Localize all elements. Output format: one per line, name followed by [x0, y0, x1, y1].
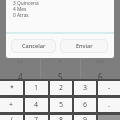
button[interactable]: 6	[74, 98, 96, 112]
staticText: .	[108, 100, 110, 110]
staticText: Cancelar	[22, 42, 46, 50]
button[interactable]: 3 Quincena	[13, 0, 114, 6]
staticText: 5	[58, 71, 63, 79]
staticText: 0 Atras	[13, 12, 29, 18]
staticText: Enviar	[76, 42, 93, 50]
staticText: +	[9, 100, 14, 110]
staticText: 4	[34, 100, 39, 110]
staticText: GHI	[17, 60, 23, 64]
button[interactable]: 1	[25, 81, 48, 95]
button[interactable]: 0 Atras	[13, 12, 114, 18]
staticText: 9	[83, 115, 88, 120]
staticText: 5	[59, 100, 64, 110]
button[interactable]: 4	[25, 98, 48, 112]
button[interactable]: 2	[50, 81, 72, 95]
staticText: 6	[83, 100, 88, 110]
button[interactable]: -	[98, 81, 120, 95]
button[interactable]: 4 Mes	[13, 6, 114, 12]
staticText: *	[10, 83, 14, 93]
staticText: 4	[18, 71, 23, 79]
button[interactable]: JKL	[40, 58, 80, 79]
staticText: MNO	[96, 60, 104, 64]
button[interactable]: 3	[74, 81, 96, 95]
button[interactable]: 8	[50, 115, 72, 120]
button[interactable]: *	[0, 81, 23, 95]
staticText: 3	[83, 83, 88, 93]
staticText: 6	[98, 71, 103, 79]
button[interactable]: +	[0, 98, 23, 112]
staticText: JKL	[58, 60, 63, 64]
staticText: 7	[34, 115, 39, 120]
staticText: -	[108, 83, 111, 93]
staticText: 4 Mes	[13, 6, 27, 12]
button[interactable]: /	[0, 115, 23, 120]
button[interactable]: 9	[74, 115, 96, 120]
staticText: 1	[34, 83, 39, 93]
button[interactable]: MNO	[80, 58, 120, 79]
button[interactable]: Cancelar	[11, 39, 56, 53]
button[interactable]: .	[98, 98, 120, 112]
button[interactable]: Enviar	[60, 39, 108, 53]
button[interactable]: 7	[25, 115, 48, 120]
button[interactable]: 5	[50, 98, 72, 112]
staticText: 2	[59, 83, 64, 93]
staticText: /	[10, 115, 13, 120]
button[interactable]: GHI	[0, 58, 40, 79]
staticText: 8	[59, 115, 64, 120]
staticText: 3 Quincena	[13, 0, 39, 6]
